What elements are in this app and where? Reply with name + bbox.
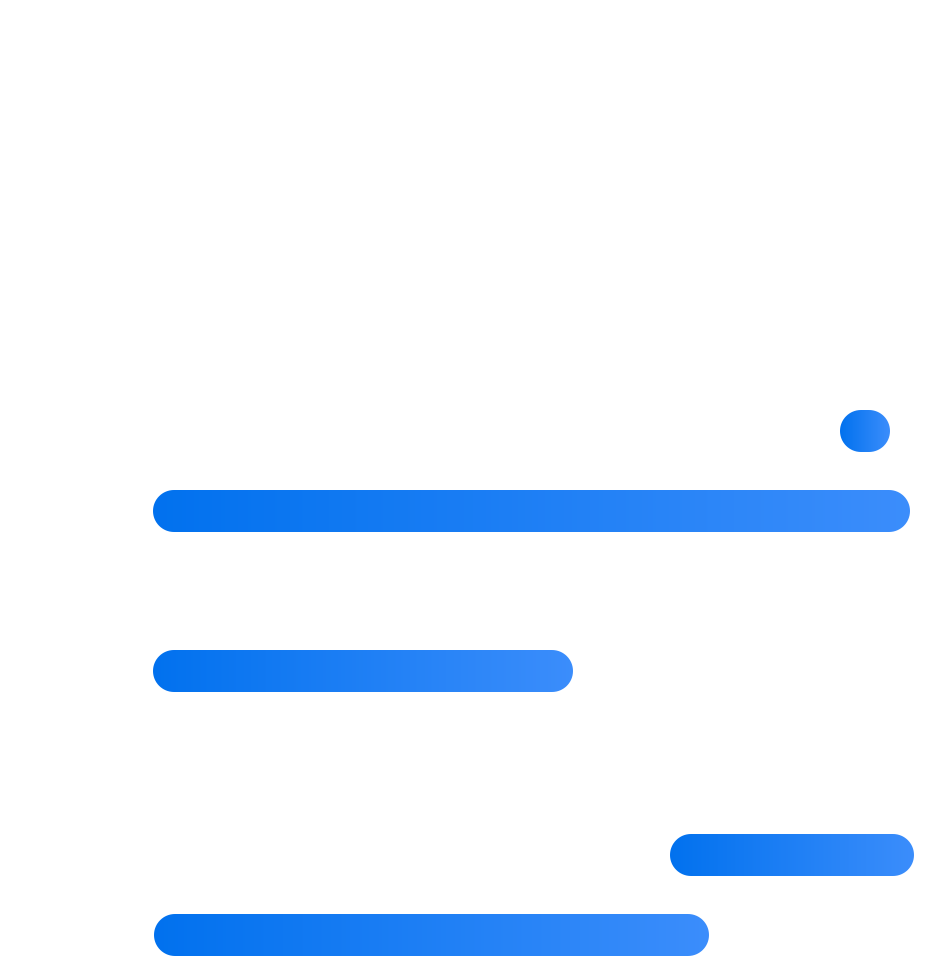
button[interactable]: Loading message bbox=[153, 650, 573, 692]
button[interactable]: Loading message bbox=[153, 490, 910, 532]
button[interactable]: Loading timestamp bbox=[840, 410, 890, 452]
button[interactable]: Loading reply bbox=[670, 834, 914, 876]
button[interactable]: Loading message bbox=[154, 914, 709, 956]
